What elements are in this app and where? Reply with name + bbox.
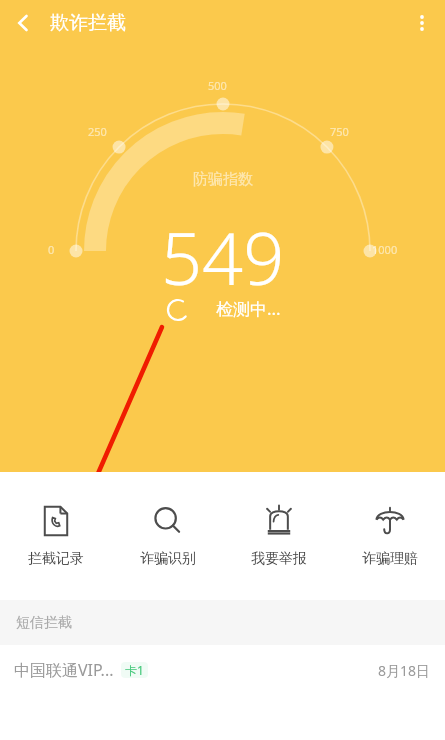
staticText: 诈骗识别 [140, 550, 196, 568]
staticText: 549 [161, 208, 285, 306]
staticText: 我要举报 [251, 550, 307, 568]
staticText: 防骗指数 [193, 170, 253, 189]
button[interactable]: 拦截记录 [0, 472, 112, 600]
staticText: 750 [330, 124, 349, 139]
staticText: 拦截记录 [28, 550, 84, 568]
staticText: 500 [208, 78, 227, 93]
button[interactable]: 中国联通VIP... [0, 645, 445, 740]
button[interactable]: 我要举报 [223, 472, 334, 600]
staticText: 1000 [372, 242, 398, 257]
staticText: 中国联通VIP... [14, 659, 114, 681]
button[interactable]: More options [399, 0, 445, 46]
staticText: 卡1 [125, 662, 144, 678]
staticText: 0 [48, 242, 55, 257]
button[interactable]: 诈骗识别 [112, 472, 223, 600]
button[interactable]: 诈骗理赔 [334, 472, 445, 600]
staticText: 诈骗理赔 [362, 550, 418, 568]
staticText: 短信拦截 [16, 614, 72, 632]
staticText: 8月18日 [378, 661, 431, 680]
staticText: 250 [88, 124, 107, 139]
button[interactable]: Back [0, 0, 46, 46]
staticText: 欺诈拦截 [50, 11, 126, 35]
staticText: 检测中... [216, 297, 281, 320]
